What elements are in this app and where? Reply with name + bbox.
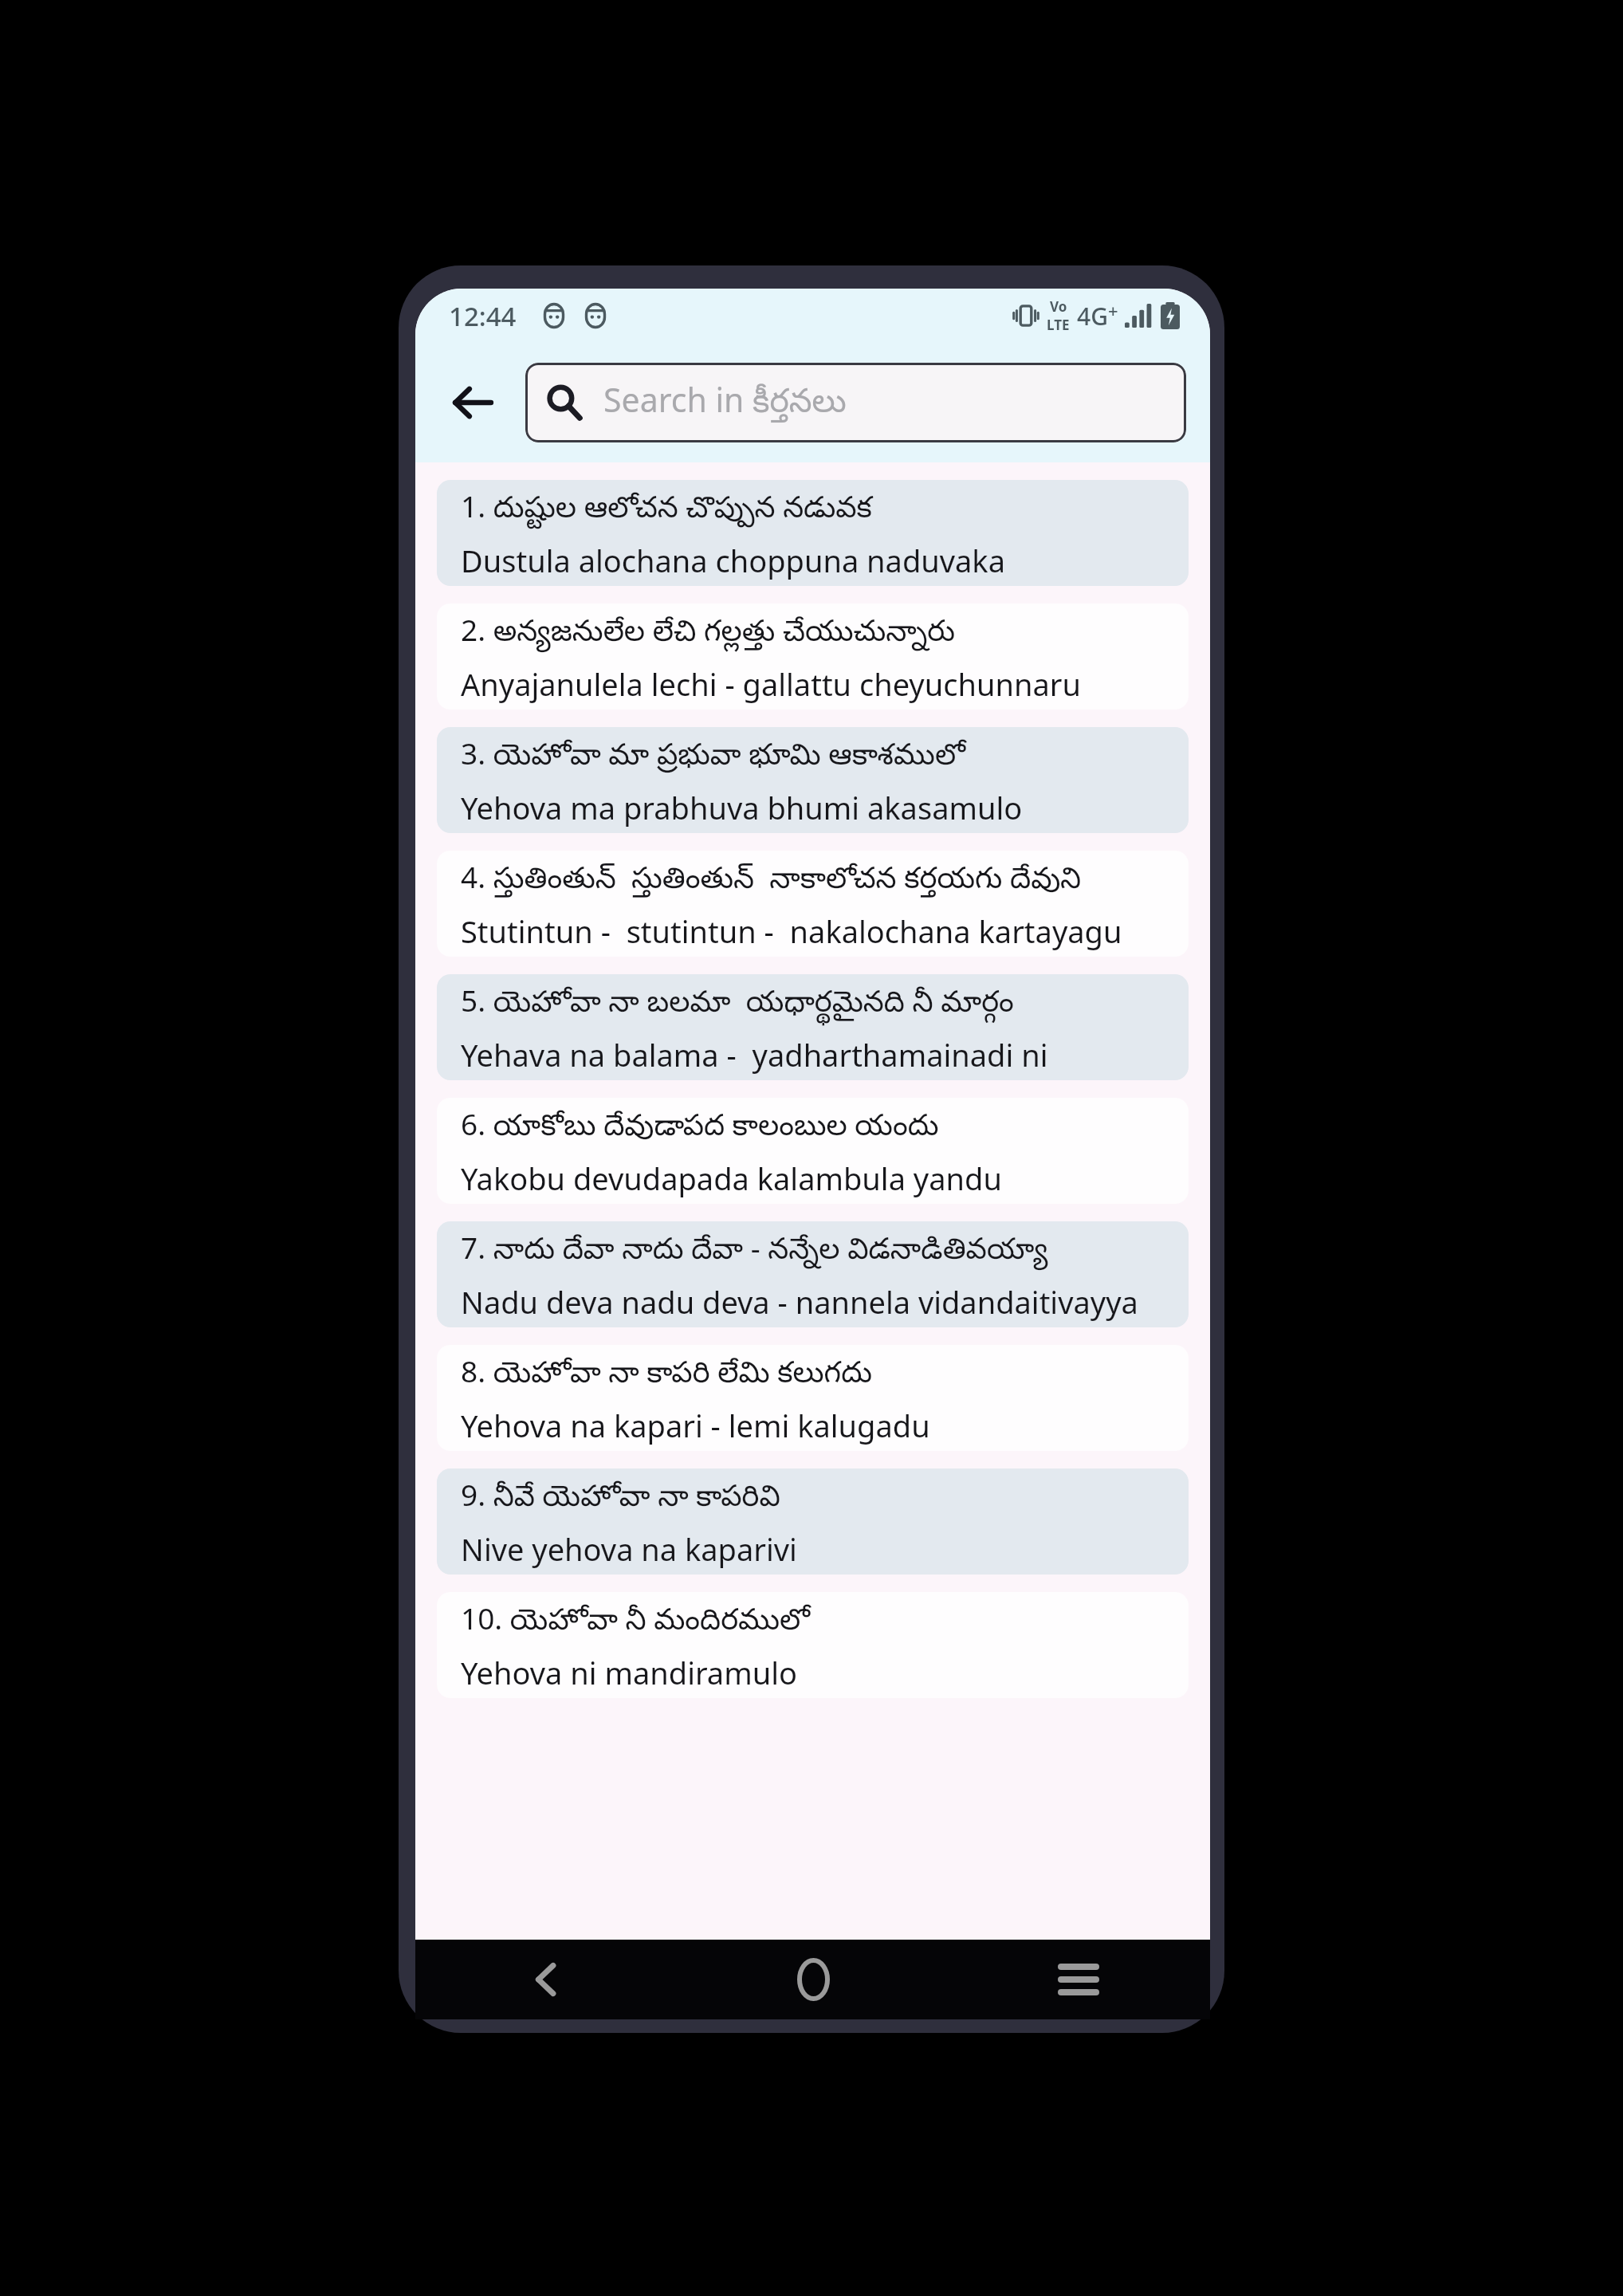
staticText: 7. నాదు దేవా నాదు దేవా - నన్నేల విడనాడిత…: [461, 1227, 1048, 1272]
staticText: Nadu deva nadu deva - nannela vidandaiti…: [461, 1281, 1138, 1323]
staticText: Yehova ma prabhuva bhumi akasamulo: [461, 787, 1023, 828]
button[interactable]: Back: [503, 1940, 591, 2019]
staticText: 1. దుష్టుల ఆలోచన చొప్పున నడువక: [461, 486, 872, 531]
staticText: Vo: [1050, 297, 1067, 316]
button[interactable]: 6. యాకోబు దేవుడాపద కాలంబుల యందు: [437, 1098, 1189, 1204]
staticText: 12:44: [449, 298, 517, 334]
staticText: 2. అన్యజనులేల లేచి గల్లత్తు చేయుచున్నారు: [461, 609, 956, 655]
button[interactable]: Search in కీర్తనలు: [525, 363, 1186, 442]
staticText: 3. యెహోవా మా ప్రభువా భూమి ఆకాశములో: [461, 733, 965, 778]
button[interactable]: 5. యెహోవా నా బలమా యధార్థమైనది నీ మార్గం: [437, 974, 1189, 1080]
button[interactable]: 4. స్తుతింతున్ స్తుతింతున్ నాకాలోచన కర్త…: [437, 851, 1189, 957]
button[interactable]: 9. నీవే యెహోవా నా కాపరివి: [437, 1468, 1189, 1575]
staticText: LTE: [1047, 316, 1070, 334]
staticText: Anyajanulela lechi - gallattu cheyuchunn…: [461, 663, 1081, 705]
staticText: Yehova ni mandiramulo: [461, 1652, 797, 1693]
staticText: 8. యెహోవా నా కాపరి లేమి కలుగదు: [461, 1350, 873, 1396]
button[interactable]: 2. అన్యజనులేల లేచి గల్లత్తు చేయుచున్నారు: [437, 603, 1189, 710]
staticText: Stutintun - stutintun - nakalochana kart…: [461, 910, 1176, 952]
button[interactable]: Home: [769, 1940, 857, 2019]
staticText: Dustula alochana choppuna naduvaka: [461, 540, 1005, 581]
staticText: 10. యెహోవా నీ మందిరములో: [461, 1598, 811, 1643]
staticText: 9. నీవే యెహోవా నా కాపరివి: [461, 1474, 780, 1520]
staticText: Search in కీర్తనలు: [603, 377, 847, 428]
button[interactable]: 7. నాదు దేవా నాదు దేవా - నన్నేల విడనాడిత…: [437, 1221, 1189, 1327]
staticText: 4. స్తుతింతున్ స్తుతింతున్ నాకాలోచన కర్త…: [461, 856, 1082, 902]
button[interactable]: 8. యెహోవా నా కాపరి లేమి కలుగదు: [437, 1345, 1189, 1451]
staticText: 4G: [1077, 300, 1108, 332]
button[interactable]: Recents: [1035, 1940, 1122, 2019]
button[interactable]: 3. యెహోవా మా ప్రభువా భూమి ఆకాశములో: [437, 727, 1189, 833]
staticText: +: [1108, 298, 1118, 322]
staticText: Yehova na kapari - lemi kalugadu: [461, 1405, 930, 1446]
staticText: Yehava na balama - yadharthamainadi ni m…: [461, 1034, 1176, 1075]
button[interactable]: 1. దుష్టుల ఆలోచన చొప్పున నడువక: [437, 480, 1189, 586]
staticText: 5. యెహోవా నా బలమా యధార్థమైనది నీ మార్గం: [461, 980, 1014, 1025]
button[interactable]: Back: [436, 366, 509, 439]
button[interactable]: 10. యెహోవా నీ మందిరములో: [437, 1592, 1189, 1698]
staticText: Yakobu devudapada kalambula yandu: [461, 1158, 1002, 1199]
staticText: 6. యాకోబు దేవుడాపద కాలంబుల యందు: [461, 1103, 939, 1149]
staticText: Nive yehova na kaparivi: [461, 1528, 797, 1570]
